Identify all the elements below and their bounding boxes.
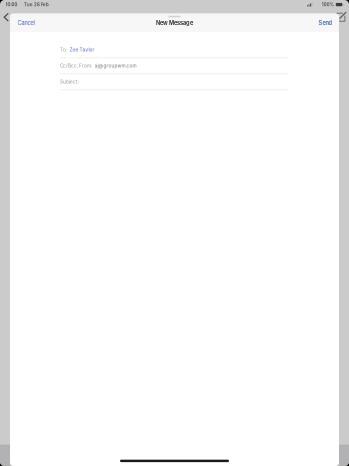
staticText: 10:00 <box>6 2 18 7</box>
button[interactable]: Send <box>318 20 331 26</box>
staticText: New Message <box>156 20 193 26</box>
staticText: 100% <box>322 2 334 7</box>
staticText: Tue 26 Feb <box>24 2 49 7</box>
button[interactable]: Subject: <box>60 74 289 90</box>
button[interactable]: Cancel <box>18 20 35 26</box>
button[interactable]: Cc/Bcc, From: <box>60 58 289 74</box>
staticText: aj@groupwm.com <box>95 63 137 69</box>
button[interactable]: To: <box>60 42 289 58</box>
button[interactable]: Compose <box>336 12 347 22</box>
staticText: Cancel <box>18 20 35 26</box>
staticText: Cc/Bcc, From: <box>60 63 92 69</box>
staticText: Send <box>318 20 331 26</box>
staticText: To: <box>60 47 67 53</box>
button[interactable]: Back <box>3 13 9 22</box>
staticText: Subject: <box>60 79 79 85</box>
staticText: Zoe Taylor <box>70 47 95 53</box>
